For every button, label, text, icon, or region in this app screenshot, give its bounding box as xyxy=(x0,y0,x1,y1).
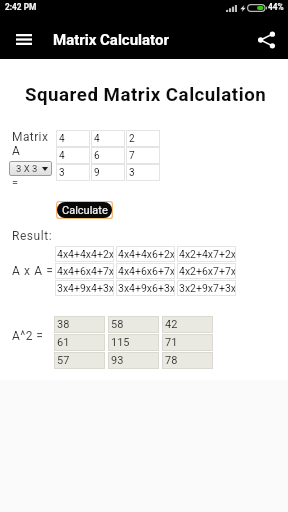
staticText: 4x2+4x7+2x3 xyxy=(179,248,235,260)
staticText: 4 xyxy=(59,133,65,145)
staticText: 42 xyxy=(165,318,178,331)
button[interactable]: 4x4+6x6+7x9 xyxy=(116,263,175,279)
button[interactable]: 93 xyxy=(108,352,159,369)
button[interactable]: Share xyxy=(245,20,287,59)
staticText: 71 xyxy=(165,336,178,349)
staticText: 2:42 PM xyxy=(5,2,37,12)
button[interactable]: 4 xyxy=(56,130,90,147)
button[interactable]: 4x2+4x7+2x3 xyxy=(177,246,236,262)
button[interactable]: 71 xyxy=(162,334,213,351)
staticText: Result: xyxy=(12,229,53,243)
button[interactable]: 3x4+9x4+3x3 xyxy=(55,280,114,296)
staticText: 4x4+4x4+2x3 xyxy=(57,248,113,260)
staticText: 4x4+6x6+7x9 xyxy=(118,265,174,277)
button[interactable]: 57 xyxy=(54,352,105,369)
staticText: 115 xyxy=(111,336,130,349)
staticText: 3x2+9x7+3x3 xyxy=(179,282,235,294)
staticText: A x A = xyxy=(12,264,54,278)
button[interactable]: 4 xyxy=(56,147,90,164)
staticText: 61 xyxy=(57,336,70,349)
staticText: 4 xyxy=(59,150,65,162)
button[interactable]: 4x2+6x7+7x3 xyxy=(177,263,236,279)
button[interactable]: 3 xyxy=(126,164,160,181)
staticText: 9 xyxy=(94,167,100,179)
staticText: 3x4+9x4+3x3 xyxy=(57,282,113,294)
staticText: Matrix xyxy=(12,130,49,144)
staticText: 2 xyxy=(129,133,135,145)
button[interactable]: 9 xyxy=(91,164,125,181)
staticText: A^2 = xyxy=(12,329,44,343)
staticText: 3 xyxy=(59,167,65,179)
button[interactable]: 42 xyxy=(162,316,213,333)
staticText: Squared Matrix Calculation xyxy=(25,84,267,106)
button[interactable]: 4x4+6x4+7x3 xyxy=(55,263,114,279)
button[interactable]: 61 xyxy=(54,334,105,351)
staticText: = xyxy=(12,176,19,189)
button[interactable]: 3x4+9x6+3x9 xyxy=(116,280,175,296)
button[interactable]: 4x4+4x4+2x3 xyxy=(55,246,114,262)
button[interactable]: Open navigation menu xyxy=(0,20,45,59)
button[interactable]: Calculate xyxy=(55,200,114,220)
button[interactable]: 3x2+9x7+3x3 xyxy=(177,280,236,296)
button[interactable]: 78 xyxy=(162,352,213,369)
staticText: 44% xyxy=(268,2,284,12)
staticText: 4x4+4x6+2x9 xyxy=(118,248,174,260)
staticText: 4 xyxy=(94,133,100,145)
button[interactable]: 7 xyxy=(126,147,160,164)
button[interactable]: 4 xyxy=(91,130,125,147)
button[interactable]: 3 xyxy=(56,164,90,181)
staticText: 93 xyxy=(111,354,124,367)
staticText: 4x4+6x4+7x3 xyxy=(57,265,113,277)
button[interactable]: 4x4+4x6+2x9 xyxy=(116,246,175,262)
staticText: Calculate xyxy=(62,204,108,217)
staticText: 4x2+6x7+7x3 xyxy=(179,265,235,277)
staticText: 78 xyxy=(165,354,178,367)
staticText: 6 xyxy=(94,150,100,162)
staticText: Matrix Calculator xyxy=(53,31,169,49)
staticText: A xyxy=(12,144,20,158)
staticText: 3 xyxy=(129,167,135,179)
button[interactable]: 38 xyxy=(54,316,105,333)
staticText: 7 xyxy=(129,150,135,162)
button[interactable]: 3 X 3 xyxy=(9,161,52,176)
staticText: 57 xyxy=(57,354,70,367)
staticText: 58 xyxy=(111,318,124,331)
button[interactable]: 6 xyxy=(91,147,125,164)
staticText: 3x4+9x6+3x9 xyxy=(118,282,174,294)
staticText: 38 xyxy=(57,318,70,331)
button[interactable]: 115 xyxy=(108,334,159,351)
staticText: 3 X 3 xyxy=(16,163,38,174)
button[interactable]: 58 xyxy=(108,316,159,333)
button[interactable]: 2 xyxy=(126,130,160,147)
